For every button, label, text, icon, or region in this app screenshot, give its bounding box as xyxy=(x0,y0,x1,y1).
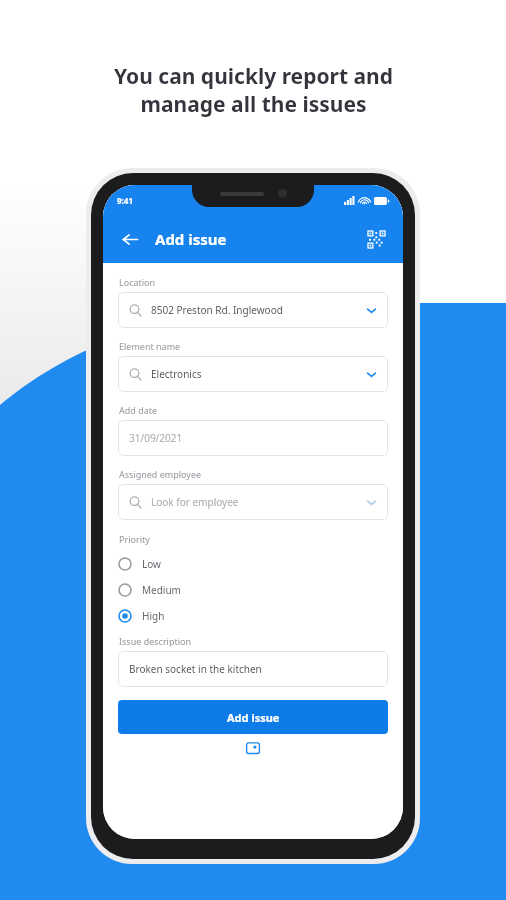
staticText: Broken socket in the kitchen xyxy=(129,662,262,676)
button[interactable]: 31/09/2021 xyxy=(118,420,388,456)
staticText: Issue description xyxy=(119,635,192,647)
staticText: Low xyxy=(142,557,161,571)
button[interactable]: Look for employee xyxy=(118,484,388,520)
button[interactable]: Attach photo xyxy=(245,740,261,756)
button[interactable]: Medium xyxy=(118,577,388,603)
staticText: Look for employee xyxy=(151,495,239,509)
staticText: Add date xyxy=(119,404,158,416)
staticText: Add issue xyxy=(155,229,227,249)
staticText: Add issue xyxy=(227,710,280,725)
button[interactable]: Back xyxy=(117,226,143,252)
staticText: You can quickly report and manage all th… xyxy=(114,62,393,118)
button[interactable]: High xyxy=(118,603,388,629)
staticText: Electronics xyxy=(151,367,202,381)
button[interactable]: Electronics xyxy=(118,356,388,392)
staticText: Assigned employee xyxy=(119,468,202,480)
button[interactable]: Add issue xyxy=(118,700,388,734)
staticText: High xyxy=(142,609,165,623)
staticText: Medium xyxy=(142,583,181,597)
staticText: Priority xyxy=(119,533,150,545)
staticText: 9:41 xyxy=(117,195,133,206)
button[interactable]: Broken socket in the kitchen xyxy=(118,651,388,687)
button[interactable]: Low xyxy=(118,551,388,577)
button[interactable]: 8502 Preston Rd. Inglewood xyxy=(118,292,388,328)
button[interactable]: Scan QR code xyxy=(363,226,389,252)
staticText: Element name xyxy=(119,340,181,352)
staticText: 8502 Preston Rd. Inglewood xyxy=(151,303,283,317)
staticText: Location xyxy=(119,276,156,288)
staticText: 31/09/2021 xyxy=(129,431,183,445)
